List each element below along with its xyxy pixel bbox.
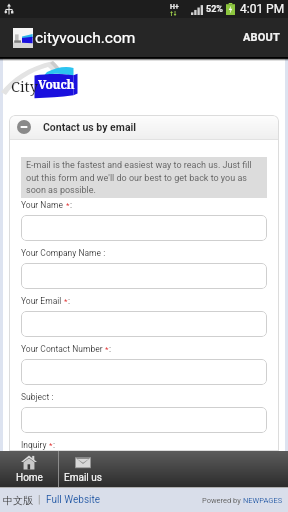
button[interactable] [21, 311, 267, 337]
staticText: ABOUT [243, 31, 281, 44]
staticText: cityvouch.com [35, 29, 136, 47]
staticText: Vouch [38, 76, 75, 92]
staticText: : [53, 440, 56, 450]
staticText: Your Company Name : [21, 248, 106, 258]
staticText: * [66, 201, 70, 210]
button[interactable]: ABOUT [237, 23, 282, 52]
staticText: Email us [64, 472, 102, 484]
staticText: | [38, 494, 41, 506]
button[interactable]: Home [0, 451, 58, 487]
staticText: Home [16, 472, 43, 484]
staticText: Contact us by email [43, 121, 137, 133]
button[interactable]: Contact us by email [9, 115, 279, 139]
staticText: 52% [206, 4, 223, 15]
staticText: 4:01 PM [240, 2, 285, 16]
staticText: Your Email [21, 296, 64, 306]
staticText: Your Contact Number [21, 344, 105, 354]
staticText: Subject : [21, 392, 54, 402]
staticText: Powered by [202, 496, 243, 505]
button[interactable]: Email us [59, 451, 107, 487]
button[interactable]: NEWPAGES [243, 496, 283, 505]
button[interactable]: 中文版 [3, 494, 33, 507]
button[interactable] [21, 263, 267, 289]
staticText: City [11, 76, 38, 96]
staticText: 中文版 [3, 494, 33, 507]
button[interactable] [21, 407, 267, 433]
staticText: : [70, 200, 73, 210]
staticText: NEWPAGES [243, 496, 283, 505]
staticText: : [109, 344, 112, 354]
staticText: Inquiry [21, 440, 49, 450]
button[interactable] [21, 215, 267, 241]
staticText: Your Name [21, 200, 66, 210]
button[interactable] [21, 359, 267, 385]
button[interactable]: Site icon [12, 27, 33, 48]
staticText: * [49, 441, 53, 450]
button[interactable]: Full Website [46, 494, 101, 506]
staticText: E-mail is the fastest and easiest way to… [26, 160, 263, 195]
staticText: Full Website [46, 494, 101, 506]
staticText: H+ [170, 3, 179, 11]
staticText: * [64, 297, 68, 306]
staticText: : [68, 296, 71, 306]
staticText: * [105, 345, 109, 354]
